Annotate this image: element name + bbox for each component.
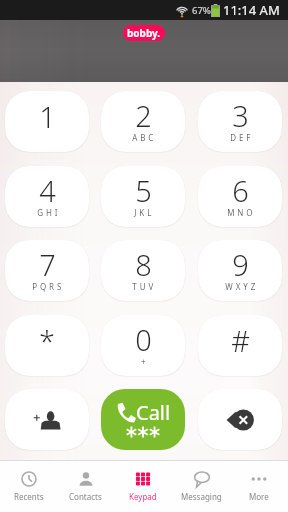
staticText: 1 [39, 97, 56, 136]
staticText: 4 [39, 171, 56, 210]
staticText: 5 [135, 171, 152, 210]
button[interactable]: Backspace [198, 389, 282, 450]
button[interactable]: Call [101, 389, 185, 450]
staticText: Recents [14, 491, 44, 502]
staticText: P Q R S [32, 281, 62, 292]
staticText: G H I [37, 207, 58, 218]
staticText: Call [136, 399, 171, 426]
button[interactable]: Add contact [5, 389, 89, 450]
staticText: Messaging [181, 491, 222, 502]
staticText: 7 [39, 245, 56, 284]
staticText: More [249, 491, 269, 502]
button[interactable]: 1 [5, 91, 89, 152]
staticText: # [231, 321, 250, 360]
staticText: T U V [132, 281, 154, 292]
button[interactable]: 3 [198, 91, 282, 152]
staticText: A B C [132, 132, 154, 143]
staticText: 67% [192, 4, 211, 17]
staticText: 11:14 AM [223, 1, 280, 19]
button[interactable]: Recents [0, 461, 57, 512]
staticText: 6 [232, 171, 249, 210]
staticText: Contacts [69, 491, 102, 502]
staticText: 3 [232, 96, 249, 135]
staticText: 9 [232, 245, 249, 284]
staticText: bobby. [127, 26, 161, 40]
staticText: 2 [135, 96, 152, 135]
staticText: Keypad [129, 491, 157, 502]
staticText: D E F [230, 132, 251, 143]
button[interactable]: 9 [198, 240, 282, 301]
button[interactable]: More [230, 461, 288, 512]
staticText: 0 [135, 320, 152, 359]
button[interactable]: 4 [5, 166, 89, 227]
staticText: + [141, 356, 146, 367]
button[interactable]: * [5, 315, 89, 376]
button[interactable]: 2 [101, 91, 185, 152]
button[interactable]: 0 [101, 315, 185, 376]
button[interactable]: Contacts [57, 461, 114, 512]
staticText: J K L [134, 207, 152, 218]
button[interactable]: bobby. [123, 25, 165, 41]
staticText: W X Y Z [225, 281, 256, 292]
staticText: M N O [227, 207, 253, 218]
button[interactable]: Messaging [172, 461, 230, 512]
staticText: * [39, 321, 55, 360]
staticText: 8 [135, 245, 152, 284]
button[interactable]: 7 [5, 240, 89, 301]
button[interactable]: # [198, 315, 282, 376]
button[interactable]: Keypad [114, 461, 172, 512]
button[interactable]: 6 [198, 166, 282, 227]
button[interactable]: 5 [101, 166, 185, 227]
button[interactable]: 8 [101, 240, 185, 301]
